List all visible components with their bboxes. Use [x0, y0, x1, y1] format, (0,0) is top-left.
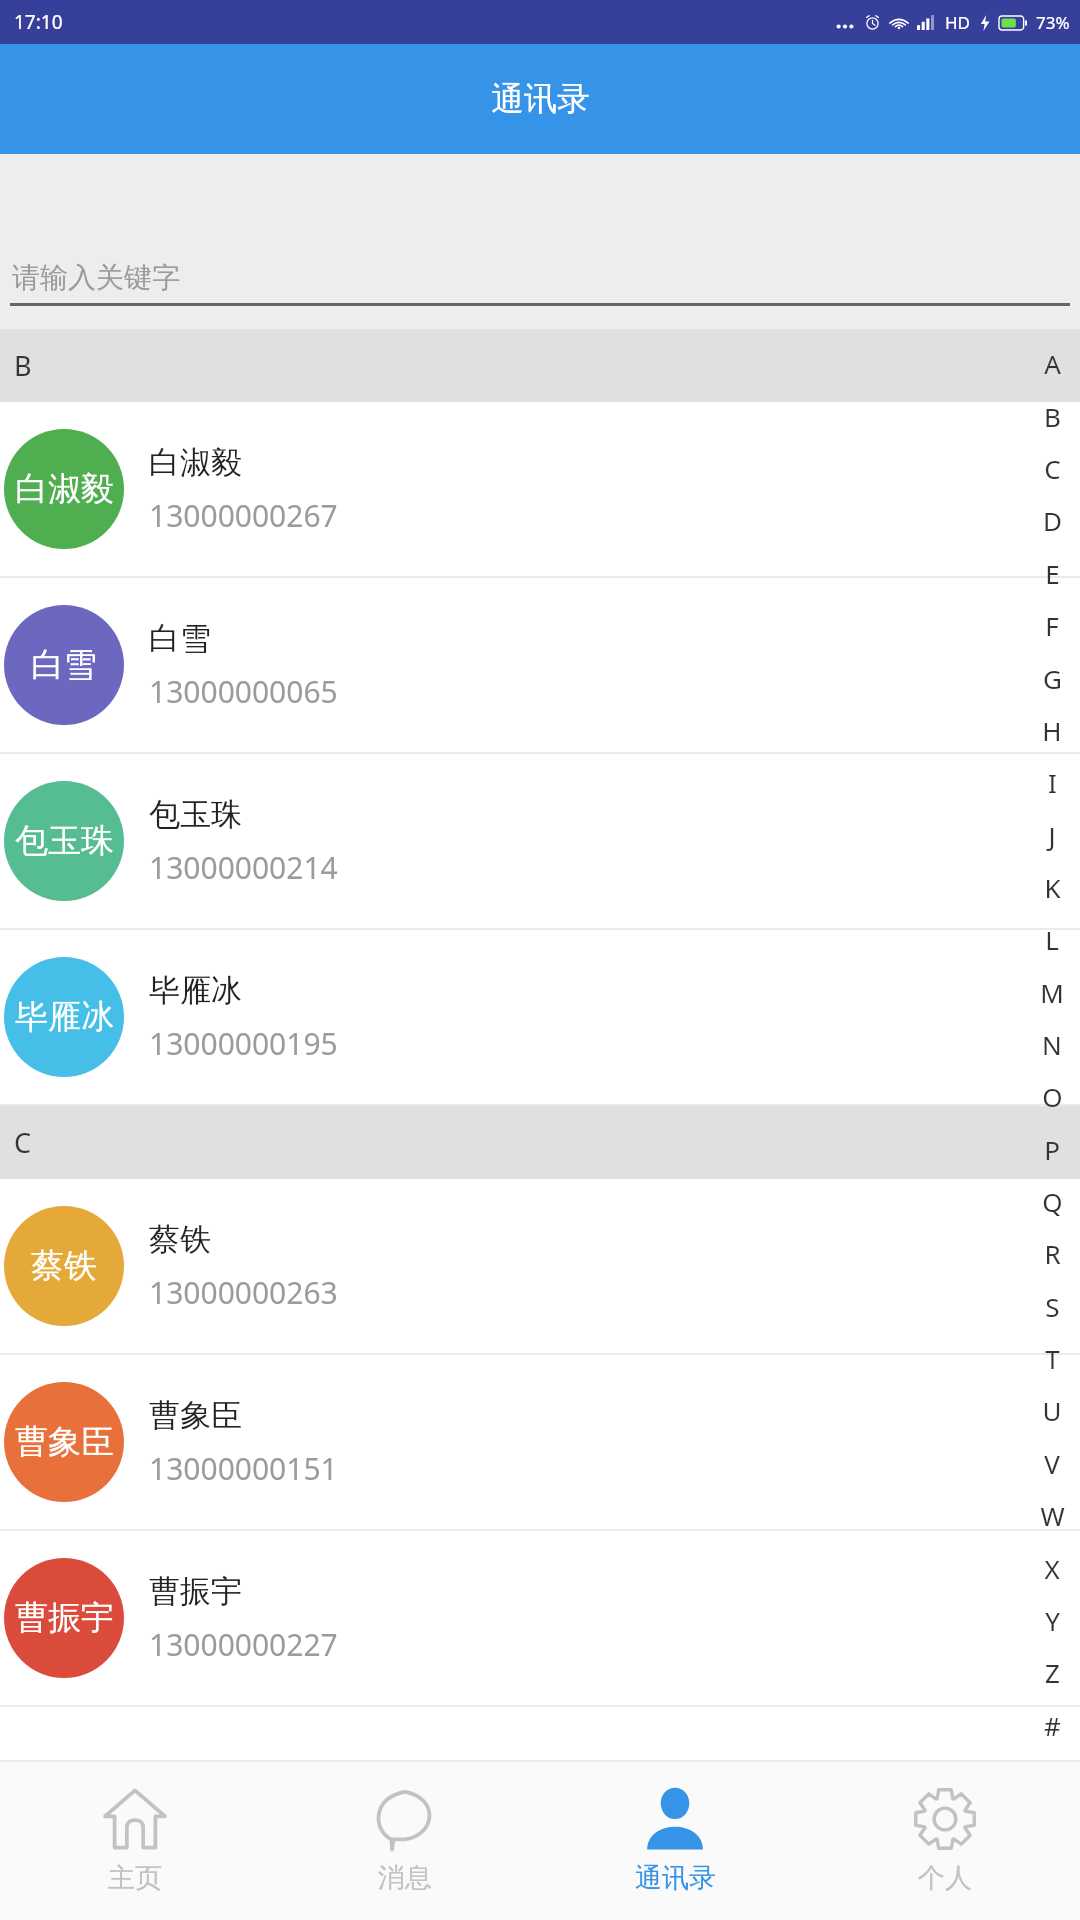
staticText: W	[1040, 1498, 1065, 1533]
staticText: Y	[1045, 1603, 1060, 1638]
staticText: 毕雁冰	[15, 996, 114, 1038]
staticText: E	[1045, 556, 1060, 591]
staticText: D	[1043, 503, 1062, 538]
staticText: B	[14, 347, 32, 384]
staticText: S	[1045, 1289, 1060, 1324]
staticText: 请输入关键字	[12, 260, 180, 295]
staticText: 蔡铁	[149, 1220, 211, 1259]
button[interactable]: 通讯录	[540, 1760, 810, 1920]
staticText: T	[1045, 1341, 1060, 1376]
staticText: 13000000195	[149, 1023, 338, 1064]
staticText: 毕雁冰	[149, 971, 242, 1010]
staticText: 曹振宇	[149, 1572, 242, 1611]
staticText: 主页	[108, 1861, 162, 1895]
staticText: Q	[1042, 1184, 1063, 1219]
staticText: C	[14, 1124, 32, 1161]
staticText: 个人	[918, 1861, 972, 1895]
staticText: 消息	[378, 1861, 432, 1895]
staticText: A	[1044, 346, 1061, 381]
staticText: P	[1044, 1132, 1060, 1167]
staticText: V	[1044, 1446, 1060, 1481]
staticText: 17:10	[14, 9, 63, 35]
staticText: HD	[945, 11, 971, 34]
staticText: L	[1045, 922, 1059, 957]
staticText: M	[1040, 975, 1064, 1010]
staticText: H	[1042, 713, 1062, 748]
staticText: 曹象臣	[15, 1421, 114, 1463]
staticText: 13000000214	[149, 847, 338, 888]
staticText: 通讯录	[491, 78, 590, 120]
staticText: Z	[1045, 1655, 1060, 1690]
staticText: N	[1042, 1027, 1062, 1062]
staticText: 包玉珠	[149, 795, 242, 834]
button[interactable]: 曹象臣	[0, 1355, 1080, 1531]
button[interactable]: Alphabet index	[1024, 329, 1080, 1760]
staticText: I	[1048, 765, 1057, 800]
staticText: 白雪	[31, 644, 97, 686]
staticText: 曹振宇	[15, 1597, 114, 1639]
staticText: 通讯录	[635, 1861, 716, 1895]
staticText: J	[1048, 818, 1056, 853]
button[interactable]: 主页	[0, 1760, 270, 1920]
button[interactable]: 个人	[810, 1760, 1080, 1920]
button[interactable]: 曹振宇	[0, 1531, 1080, 1707]
staticText: 13000000263	[149, 1272, 338, 1313]
staticText: 白雪	[149, 619, 211, 658]
staticText: 13000000065	[149, 671, 338, 712]
button[interactable]: 毕雁冰	[0, 930, 1080, 1106]
staticText: 13000000227	[149, 1624, 338, 1665]
staticText: X	[1044, 1551, 1060, 1586]
staticText: C	[1044, 451, 1061, 486]
staticText: 73%	[1036, 11, 1070, 34]
staticText: 曹象臣	[149, 1396, 242, 1435]
staticText: G	[1043, 661, 1062, 696]
staticText: 白淑毅	[15, 468, 114, 510]
button[interactable]: 白淑毅	[0, 402, 1080, 578]
staticText: 蔡铁	[31, 1245, 97, 1287]
button[interactable]: 白雪	[0, 578, 1080, 754]
button[interactable]: 消息	[270, 1760, 540, 1920]
button[interactable]: 蔡铁	[0, 1179, 1080, 1355]
staticText: 13000000151	[149, 1448, 338, 1489]
button[interactable]: 包玉珠	[0, 754, 1080, 930]
staticText: 白淑毅	[149, 443, 242, 482]
staticText: B	[1044, 399, 1061, 434]
staticText: #	[1044, 1708, 1061, 1743]
staticText: 包玉珠	[15, 820, 114, 862]
staticText: U	[1042, 1393, 1062, 1428]
staticText: F	[1045, 608, 1059, 643]
staticText: R	[1044, 1236, 1061, 1271]
staticText: 13000000267	[149, 495, 338, 536]
staticText: O	[1042, 1079, 1063, 1114]
staticText: K	[1044, 870, 1061, 905]
